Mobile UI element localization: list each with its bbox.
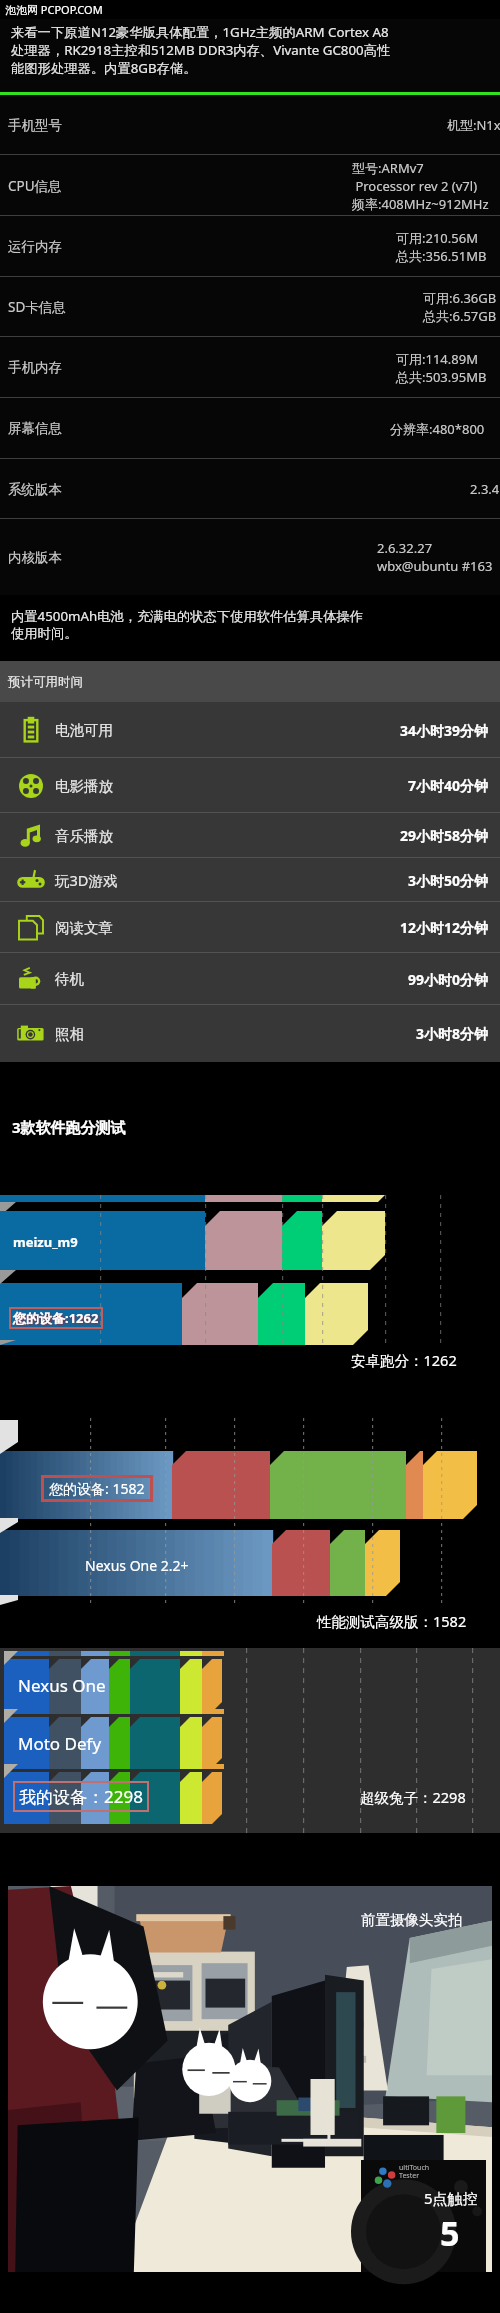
- button[interactable]: SD卡信息: [0, 277, 500, 337]
- staticText: meizu_m9: [13, 1233, 78, 1251]
- button[interactable]: 电影播放: [0, 758, 500, 813]
- staticText: 处理器，RK2918主控和512MB DDR3内存、Vivante GC800高…: [11, 41, 391, 59]
- button[interactable]: 手机内存: [0, 337, 500, 398]
- staticText: 安卓跑分：1262: [351, 1350, 457, 1370]
- button[interactable]: 音乐播放: [0, 813, 500, 858]
- button[interactable]: 待机: [0, 953, 500, 1005]
- staticText: 3小时8分钟: [416, 1024, 489, 1043]
- staticText: 可用:210.56M: [396, 229, 478, 247]
- staticText: 能图形处理器。内置8GB存储。: [11, 59, 197, 77]
- staticText: 我的设备：2298: [19, 1785, 143, 1808]
- button[interactable]: 阅读文章: [0, 902, 500, 953]
- button[interactable]: 手机型号: [0, 95, 500, 155]
- staticText: 总共:356.51MB: [396, 247, 487, 265]
- staticText: 分辨率:480*800: [390, 420, 485, 438]
- staticText: 电影播放: [55, 777, 113, 795]
- staticText: 频率:408MHz~912MHz: [352, 195, 489, 213]
- staticText: Moto Defy: [18, 1732, 102, 1755]
- staticText: Nexus One: [18, 1674, 106, 1697]
- staticText: 7小时40分钟: [408, 776, 489, 795]
- staticText: Processor rev 2 (v7l): [352, 177, 478, 195]
- button[interactable]: 预计可用时间: [0, 661, 500, 702]
- button[interactable]: 我的设备：2298: [19, 1785, 143, 1808]
- staticText: 来看一下原道N12豪华版具体配置，1GHz主频的ARM Cortex A8: [11, 23, 389, 41]
- staticText: 使用时间。: [11, 625, 78, 642]
- staticText: ultiTouch Tester: [399, 2163, 430, 2180]
- staticText: 3小时50分钟: [408, 871, 489, 890]
- button[interactable]: 您的设备: 1582: [49, 1479, 145, 1498]
- staticText: 总共:503.95MB: [396, 368, 487, 386]
- staticText: 手机内存: [8, 359, 62, 376]
- staticText: 总共:6.57GB: [423, 307, 497, 325]
- button[interactable]: 系统版本: [0, 459, 500, 519]
- staticText: 阅读文章: [55, 919, 113, 937]
- staticText: 2.6.32.27: [377, 539, 433, 557]
- staticText: 您的设备: 1582: [49, 1479, 145, 1498]
- button[interactable]: 内核版本: [0, 519, 500, 595]
- staticText: Nexus One 2.2+: [85, 1556, 189, 1575]
- staticText: 可用:6.36GB: [423, 289, 497, 307]
- staticText: wbx@ubuntu #163: [377, 557, 493, 575]
- staticText: 机型:N1x: [447, 116, 500, 134]
- staticText: 照相: [55, 1025, 84, 1043]
- staticText: 电池可用: [55, 721, 113, 739]
- staticText: 99小时0分钟: [408, 970, 489, 989]
- staticText: 12小时12分钟: [400, 918, 489, 937]
- button[interactable]: CPU信息: [0, 155, 500, 216]
- button[interactable]: 电池可用: [0, 702, 500, 758]
- staticText: 前置摄像头实拍: [361, 1911, 463, 1929]
- button[interactable]: 运行内存: [0, 216, 500, 277]
- staticText: 泡泡网 PCPOP.COM: [5, 2, 103, 17]
- button[interactable]: 屏幕信息: [0, 398, 500, 459]
- staticText: 可用:114.89M: [396, 350, 478, 368]
- staticText: SD卡信息: [8, 298, 66, 316]
- staticText: 超级兔子：2298: [360, 1787, 466, 1807]
- staticText: 运行内存: [8, 238, 62, 255]
- staticText: CPU信息: [8, 177, 62, 195]
- staticText: 性能测试高级版：1582: [317, 1611, 467, 1631]
- button[interactable]: 玩3D游戏: [0, 858, 500, 902]
- staticText: 29小时58分钟: [400, 826, 489, 845]
- staticText: 34小时39分钟: [400, 721, 489, 740]
- staticText: 内置4500mAh电池，充满电的状态下使用软件估算具体操作: [11, 607, 364, 625]
- staticText: 您的设备:1262: [13, 1309, 99, 1327]
- staticText: 5: [440, 2210, 460, 2256]
- staticText: 3款软件跑分测试: [12, 1117, 126, 1137]
- button[interactable]: 您的设备:1262: [13, 1309, 99, 1327]
- staticText: 预计可用时间: [8, 674, 83, 690]
- staticText: 音乐播放: [55, 827, 113, 845]
- staticText: 内核版本: [8, 549, 62, 566]
- staticText: 型号:ARMv7: [352, 159, 424, 177]
- button[interactable]: MultiTouch Tester: [361, 2160, 486, 2272]
- staticText: 玩3D游戏: [55, 870, 118, 890]
- staticText: 手机型号: [8, 117, 62, 134]
- staticText: 5点触控: [424, 2188, 478, 2208]
- staticText: 2.3.4: [470, 480, 500, 498]
- button[interactable]: 照相: [0, 1005, 500, 1062]
- staticText: 系统版本: [8, 481, 62, 498]
- staticText: 待机: [55, 970, 84, 988]
- staticText: 屏幕信息: [8, 420, 62, 437]
